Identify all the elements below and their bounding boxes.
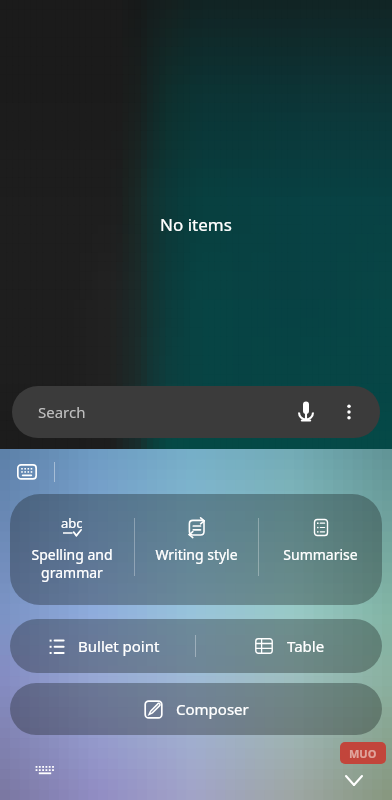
button[interactable]: Keyboard bbox=[12, 457, 42, 487]
button[interactable]: abc bbox=[10, 494, 134, 605]
button[interactable]: Summarise bbox=[259, 494, 382, 605]
button[interactable]: Bullet point bbox=[10, 619, 195, 673]
staticText: Bullet point bbox=[78, 636, 160, 656]
staticText: No items bbox=[160, 213, 232, 236]
button[interactable]: Voice search bbox=[284, 390, 328, 434]
button[interactable]: Table bbox=[196, 619, 382, 673]
staticText: Summarise bbox=[283, 545, 358, 564]
staticText: Search bbox=[38, 402, 284, 422]
staticText: Composer bbox=[176, 699, 249, 719]
button[interactable]: Hide keyboard bbox=[338, 764, 370, 796]
button[interactable]: Keyboard bbox=[32, 758, 58, 784]
button[interactable]: Search bbox=[12, 386, 380, 438]
staticText: Writing style bbox=[155, 545, 238, 564]
staticText: MUO bbox=[349, 746, 377, 761]
button[interactable]: Writing style bbox=[135, 494, 258, 605]
staticText: Spelling and grammar bbox=[31, 545, 113, 582]
staticText: abc bbox=[61, 514, 83, 532]
staticText: Table bbox=[287, 636, 325, 656]
button[interactable]: Composer bbox=[10, 683, 382, 735]
button[interactable]: More options bbox=[328, 391, 370, 433]
